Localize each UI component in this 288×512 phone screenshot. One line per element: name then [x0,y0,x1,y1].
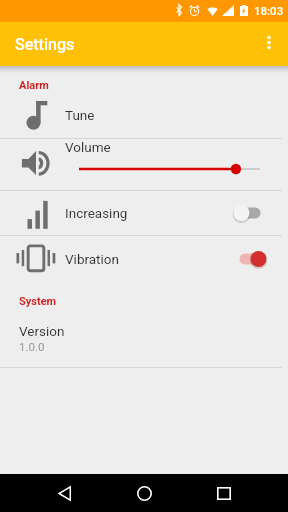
button[interactable] [228,246,268,272]
staticText: Version [19,323,65,339]
button[interactable] [228,200,268,226]
button[interactable]: Recents [202,474,246,512]
button[interactable]: Increasing [0,190,288,235]
button[interactable]: Back [42,474,86,512]
staticText: Volume [65,139,111,155]
staticText: Settings [15,35,75,54]
button[interactable] [79,161,260,177]
staticText: Tune [65,107,288,123]
button[interactable]: Version [0,313,288,362]
staticText: Increasing [65,205,228,221]
button[interactable]: More options [247,22,288,66]
button[interactable]: Home [122,474,166,512]
staticText: Vibration [65,251,228,267]
button[interactable]: Tune [0,92,288,138]
staticText: 18:03 [254,4,284,17]
staticText: System [19,295,57,308]
staticText: 1.0.0 [19,340,45,353]
staticText: Alarm [19,79,49,92]
button[interactable]: Vibration [0,235,288,282]
